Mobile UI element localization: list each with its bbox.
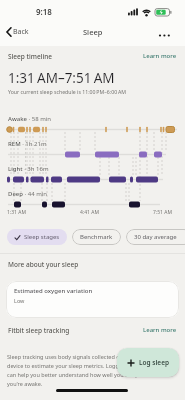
button[interactable]: Estimated oxygen variation bbox=[6, 281, 179, 318]
staticText: 4:41 AM bbox=[80, 209, 99, 216]
staticText: Sleep tracking uses body signals collect… bbox=[7, 353, 143, 388]
staticText: Estimated oxygen variation bbox=[14, 287, 93, 295]
button[interactable]: 30 day average bbox=[126, 229, 185, 245]
staticText: 1:31 AM–7:51 AM bbox=[8, 69, 115, 87]
staticText: Deep · 44 min bbox=[8, 190, 48, 198]
staticText: 7:51 AM bbox=[153, 209, 172, 216]
staticText: Sleep bbox=[83, 27, 103, 37]
staticText: Benchmark bbox=[80, 233, 113, 241]
staticText: Low bbox=[14, 297, 25, 304]
staticText: 9:18 bbox=[36, 6, 52, 17]
staticText: Light · 3h 16m bbox=[8, 165, 49, 173]
staticText: Log sleep bbox=[139, 358, 170, 367]
staticText: More about your sleep bbox=[8, 260, 79, 269]
staticText: REM · 1h 21m bbox=[8, 140, 47, 148]
button[interactable]: Log sleep bbox=[117, 348, 179, 377]
staticText: Awake · 58 min bbox=[8, 115, 52, 123]
button[interactable]: Sleep stages bbox=[7, 229, 67, 245]
staticText: Sleep timeline bbox=[8, 52, 52, 61]
button[interactable]: Back bbox=[5, 26, 29, 38]
staticText: 1:31 AM bbox=[7, 209, 26, 216]
button[interactable]: Benchmark bbox=[72, 229, 121, 245]
staticText: Sleep stages bbox=[24, 233, 60, 241]
staticText: Fitbit sleep tracking bbox=[8, 326, 70, 335]
staticText: Your current sleep schedule is 11:00 PM–… bbox=[8, 88, 126, 95]
button[interactable]: Learn more bbox=[143, 52, 177, 60]
button[interactable]: Learn more bbox=[143, 326, 177, 334]
button[interactable] bbox=[158, 33, 174, 39]
staticText: Back bbox=[13, 27, 29, 37]
staticText: 30 day average bbox=[134, 233, 177, 241]
